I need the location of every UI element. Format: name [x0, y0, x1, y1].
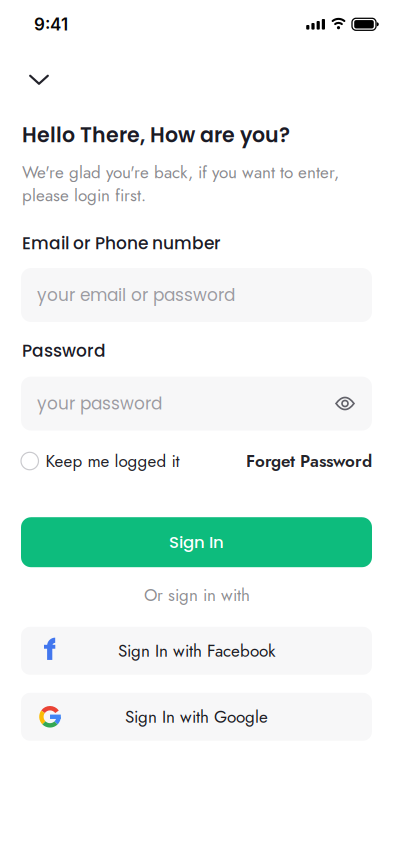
staticText: Keep me logged it [45, 449, 179, 473]
staticText: Sign In with Google [125, 704, 268, 729]
staticText: please login first. [22, 183, 146, 208]
staticText: your password [37, 392, 162, 415]
button[interactable]: Sign In [0, 473, 394, 567]
staticText: 9:41 [34, 14, 68, 35]
button[interactable]: Dismiss [0, 35, 49, 85]
staticText: Email or Phone number [22, 231, 221, 255]
button[interactable]: Sign In with Google [0, 675, 394, 741]
staticText: Sign In [169, 531, 224, 554]
staticText: Or sign in with [144, 583, 250, 607]
staticText: Password [22, 339, 106, 363]
staticText: We're glad you're back, if you want to e… [22, 160, 339, 185]
button[interactable]: Sign In with Facebook [0, 607, 394, 675]
staticText: Forget Password [246, 449, 372, 473]
staticText: Hello There, How are you? [22, 121, 290, 149]
button[interactable]: Forget Password [246, 449, 372, 473]
staticText: your email or password [37, 283, 235, 307]
button[interactable]: Email or Phone number field [0, 255, 394, 322]
button[interactable]: Password field [0, 363, 394, 431]
staticText: Sign In with Facebook [118, 638, 275, 663]
button[interactable]: Keep me logged it [21, 449, 179, 473]
